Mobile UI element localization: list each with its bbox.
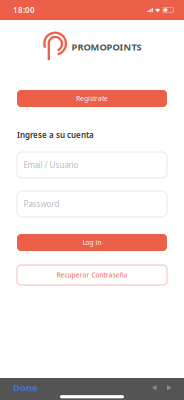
button[interactable]: Done — [7, 380, 43, 395]
button[interactable]: Recuperar Contraseña — [17, 265, 167, 285]
button[interactable]: Previous field — [147, 380, 162, 395]
staticText: Email / Usuario — [23, 160, 78, 170]
staticText: Done — [13, 381, 37, 394]
staticText: 18:00 — [13, 5, 35, 15]
staticText: Regístrate — [76, 94, 108, 103]
staticText: Recuperar Contraseña — [56, 271, 127, 279]
button[interactable]: Next field — [162, 380, 177, 395]
button[interactable]: Log in — [17, 234, 167, 251]
button[interactable]: Regístrate — [17, 90, 167, 107]
staticText: Log in — [82, 238, 101, 247]
staticText: Ingrese a su cuenta — [17, 130, 94, 140]
staticText: PROMOPOINTS — [71, 41, 141, 53]
staticText: Password — [23, 199, 59, 209]
